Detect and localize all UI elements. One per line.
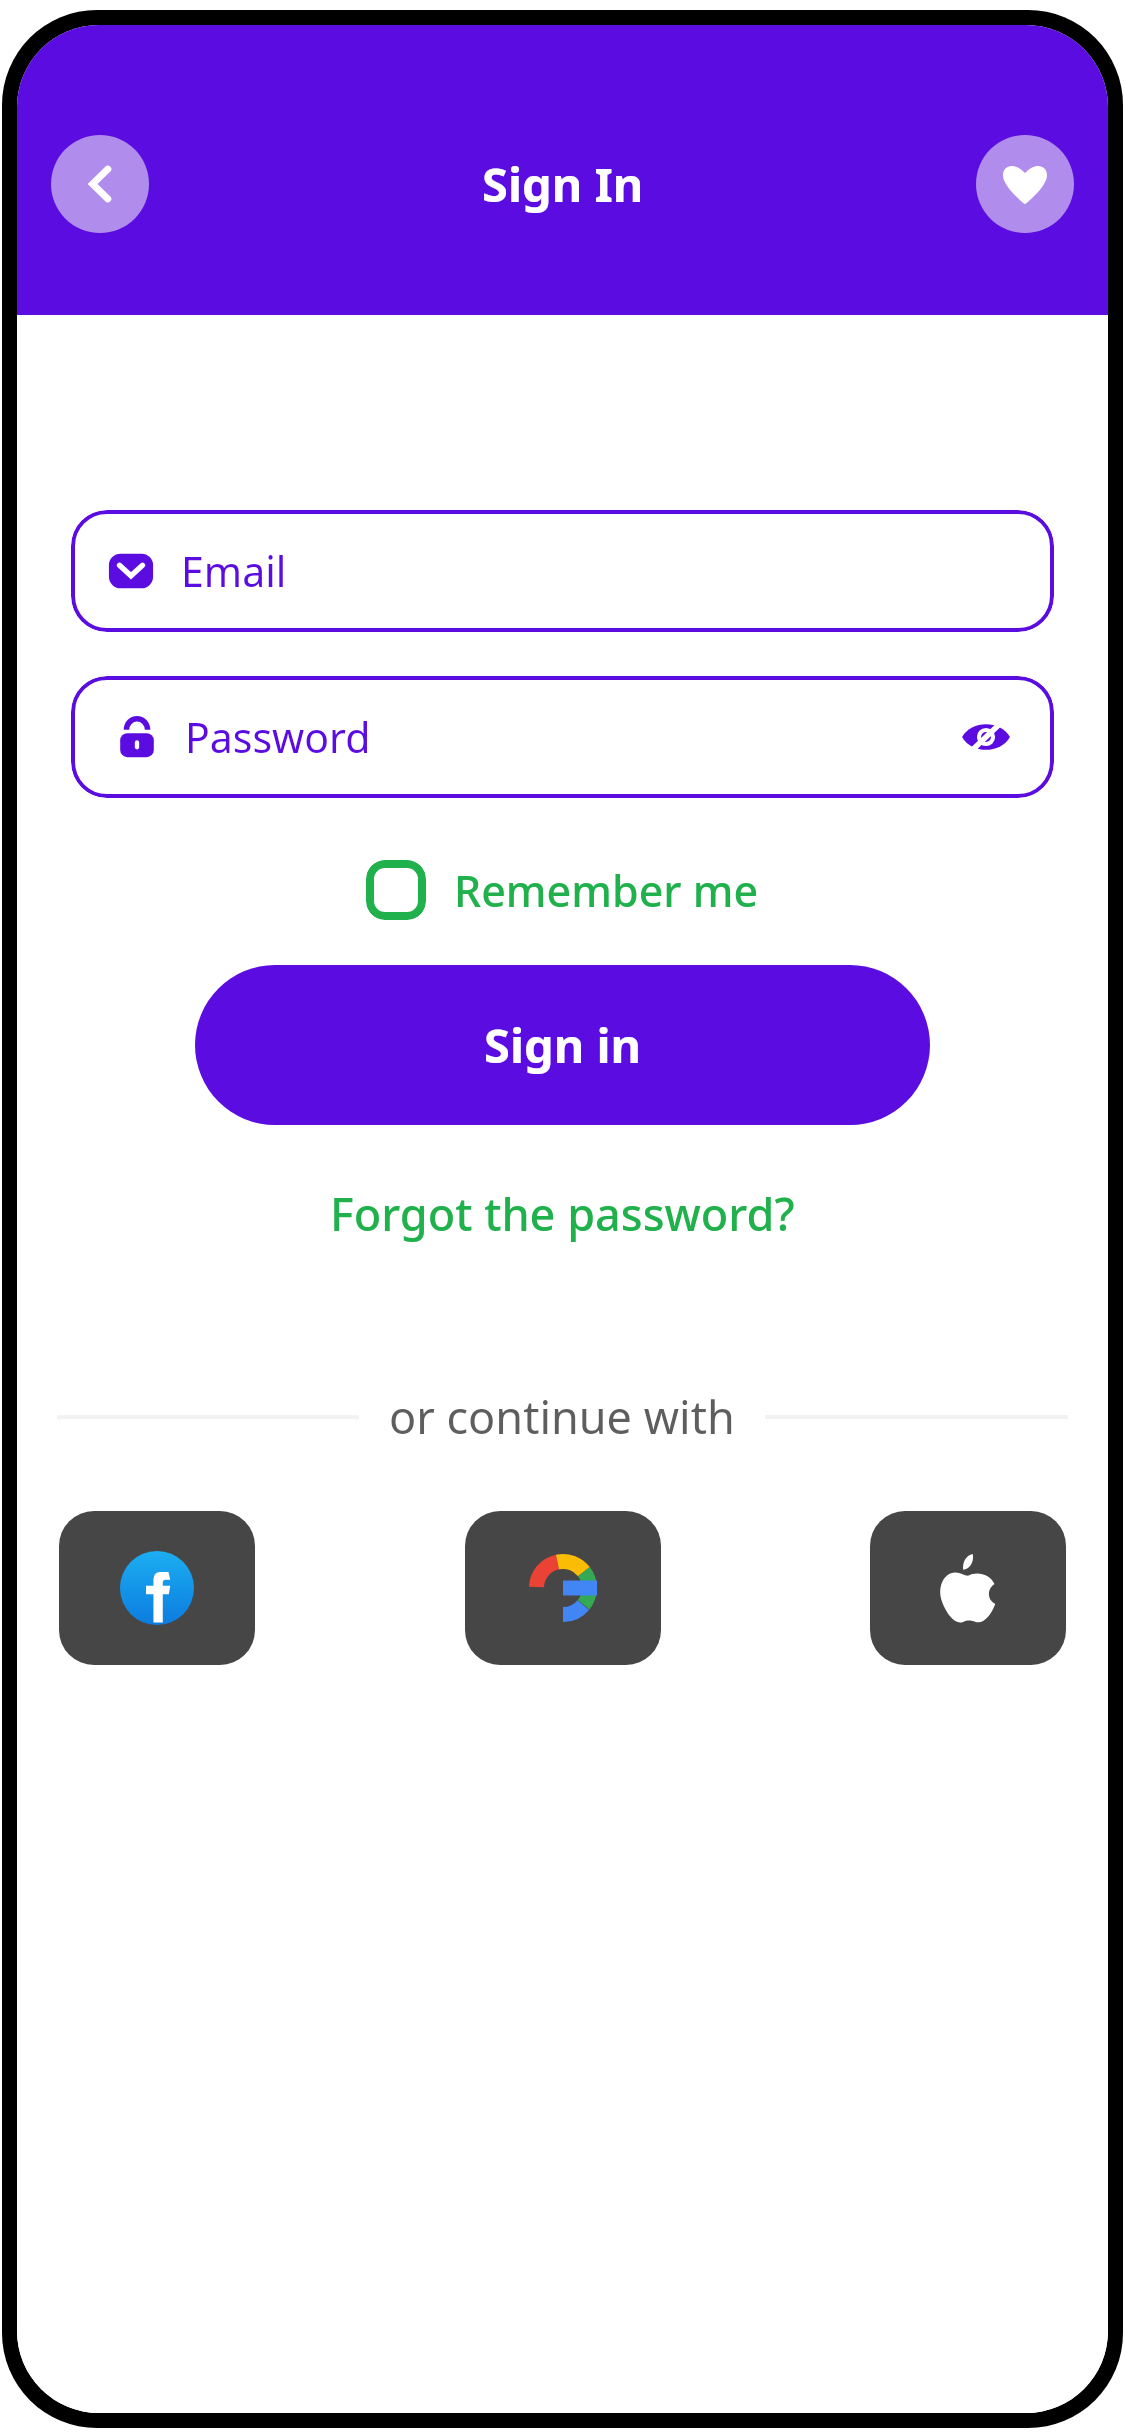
staticText: Sign in bbox=[484, 1013, 642, 1077]
button[interactable]: Show password bbox=[958, 709, 1014, 765]
button[interactable]: Remember me bbox=[366, 860, 759, 920]
button[interactable]: Sign in with Apple bbox=[870, 1511, 1066, 1665]
staticText: Sign In bbox=[482, 152, 644, 216]
button[interactable]: Sign in with Google bbox=[465, 1511, 661, 1665]
staticText: Email bbox=[181, 543, 287, 599]
button[interactable]: Password bbox=[71, 676, 1054, 798]
button[interactable]: Sign in with Facebook bbox=[59, 1511, 255, 1665]
button[interactable]: Back bbox=[51, 135, 149, 233]
staticText: Remember me bbox=[454, 861, 759, 920]
button[interactable]: Email bbox=[71, 510, 1054, 632]
button[interactable]: Favorite bbox=[976, 135, 1074, 233]
staticText: or continue with bbox=[389, 1386, 735, 1447]
button[interactable]: Sign in bbox=[195, 965, 930, 1125]
staticText: Password bbox=[185, 709, 371, 765]
staticText: Forgot the password? bbox=[330, 1183, 795, 1244]
button[interactable]: Forgot the password? bbox=[330, 1183, 795, 1244]
